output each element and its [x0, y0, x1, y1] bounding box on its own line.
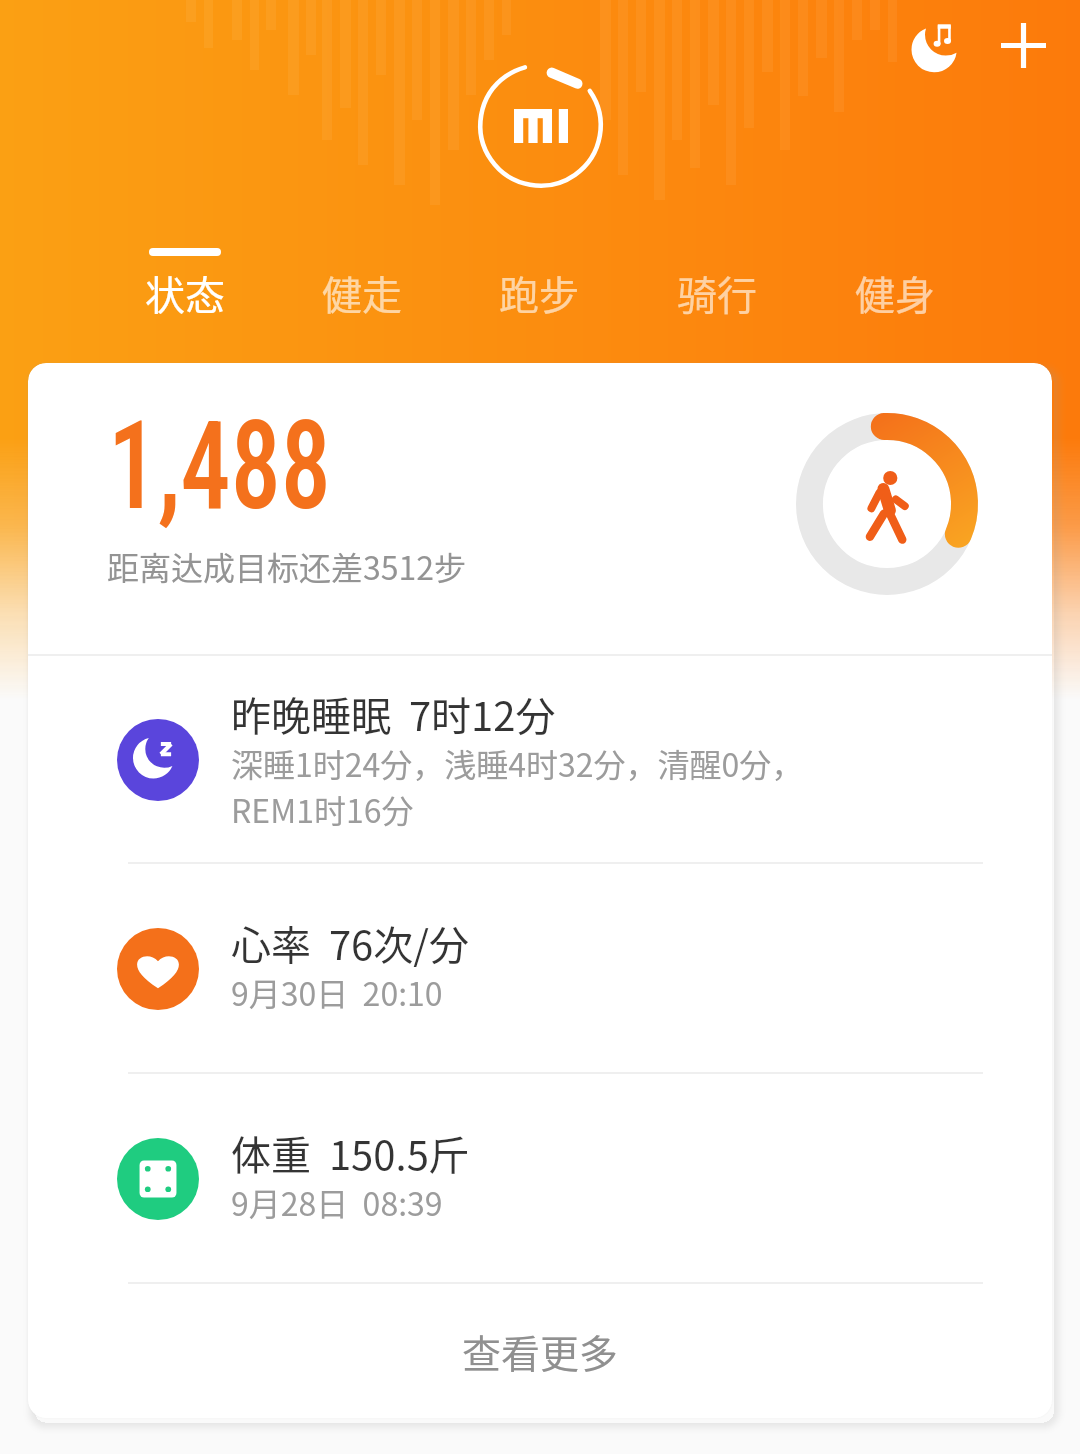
button[interactable]: 骑行	[628, 240, 806, 340]
staticText: 深睡1时24分，浅睡4时32分，清醒0分， REM1时16分	[231, 740, 804, 832]
button[interactable]: 跑步	[450, 240, 628, 340]
staticText: 健身	[855, 264, 935, 322]
staticText: 心率 76次/分	[231, 914, 469, 972]
staticText: 距离达成目标还差3512步	[107, 543, 467, 589]
button[interactable]: 状态	[96, 240, 273, 340]
button[interactable]: 健走	[273, 240, 450, 340]
button[interactable]: 心率 76次/分	[28, 864, 1052, 1074]
staticText: 9月30日 20:10	[231, 969, 443, 1015]
staticText: 跑步	[499, 264, 579, 322]
staticText: 1,488	[108, 395, 331, 538]
staticText: 昨晚睡眠 7时12分	[231, 685, 556, 743]
staticText: 健走	[322, 264, 402, 322]
staticText: 骑行	[677, 264, 757, 322]
button[interactable]: 查看更多	[28, 1284, 1052, 1418]
staticText: 9月28日 08:39	[231, 1179, 443, 1225]
staticText: 状态	[145, 264, 225, 322]
staticText: 体重 150.5斤	[231, 1124, 469, 1182]
staticText: 查看更多	[462, 1323, 619, 1379]
button[interactable]: Add	[998, 20, 1048, 70]
button[interactable]: 健身	[806, 240, 984, 340]
button[interactable]: Sleep music	[903, 18, 959, 74]
button[interactable]: 昨晚睡眠 7时12分	[28, 656, 1052, 864]
button[interactable]: 1,488	[28, 363, 1052, 654]
button[interactable]: 体重 150.5斤	[28, 1074, 1052, 1284]
